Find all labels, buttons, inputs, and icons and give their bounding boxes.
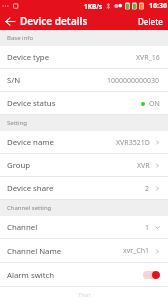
button[interactable]: Channel (0, 216, 168, 239)
staticText: 1000000000030 (107, 76, 160, 86)
staticText: S/N (7, 75, 21, 86)
staticText: xvr_Ch1 (123, 246, 150, 256)
button[interactable]: S/N (0, 69, 168, 92)
staticText: Channel setting (7, 204, 52, 212)
staticText: Device details (20, 14, 88, 28)
staticText: XVR3521D (116, 138, 150, 148)
button[interactable]: Device share (0, 177, 168, 200)
staticText: 2 (145, 184, 150, 194)
button[interactable]: Channel Name (0, 239, 168, 263)
button[interactable]: Device name (0, 131, 168, 154)
staticText: 1KB/s (84, 2, 103, 11)
button[interactable]: Alarm switch (0, 263, 168, 287)
staticText: 1 (145, 223, 150, 233)
staticText: Delete (138, 16, 163, 27)
button[interactable]: Alarm switch (143, 271, 160, 279)
button[interactable]: Delete (132, 14, 168, 29)
staticText: Device type (7, 52, 50, 63)
staticText: Device share (7, 183, 54, 194)
staticText: Alarm switch (7, 270, 55, 281)
staticText: Group (7, 160, 31, 171)
staticText: Device status (7, 98, 56, 109)
button[interactable]: Device status (0, 92, 168, 115)
staticText: XVR (137, 161, 150, 171)
staticText: That (78, 291, 91, 299)
button[interactable]: Device type (0, 46, 168, 69)
staticText: Setting (7, 119, 27, 127)
staticText: Channel (7, 222, 38, 233)
button[interactable]: Group (0, 154, 168, 177)
staticText: Channel Name (7, 246, 62, 257)
staticText: XVR_16 (136, 53, 160, 63)
staticText: Device name (7, 137, 54, 148)
staticText: ON (149, 99, 160, 109)
staticText: Base info (7, 34, 34, 42)
button[interactable]: Back (2, 13, 18, 29)
staticText: 16:36 (149, 1, 167, 11)
